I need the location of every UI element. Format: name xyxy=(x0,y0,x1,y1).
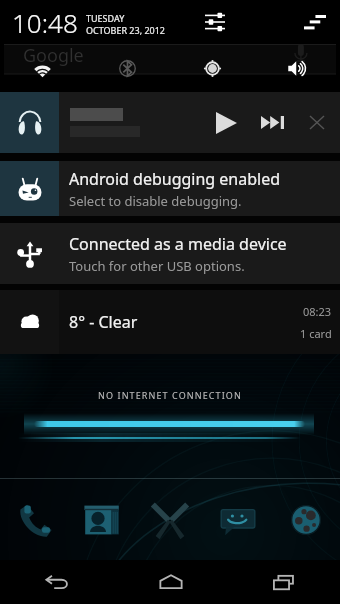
button[interactable]: Android debugging xyxy=(0,161,340,216)
button[interactable]: USB connection xyxy=(0,223,340,284)
button[interactable]: Location xyxy=(170,44,255,92)
button[interactable]: Wi-Fi xyxy=(0,44,85,92)
staticText: Google xyxy=(23,43,84,68)
other: Weather xyxy=(0,290,59,354)
button[interactable]: Bluetooth xyxy=(85,44,170,92)
staticText: Touch for other USB options. xyxy=(69,257,245,275)
staticText: Select to disable debugging. xyxy=(69,192,242,210)
staticText: NO INTERNET CONNECTION xyxy=(98,389,242,401)
staticText: 8° - Clear xyxy=(69,311,138,333)
button[interactable]: Weather xyxy=(0,290,340,354)
staticText: TUESDAY xyxy=(86,12,125,24)
staticText: Connected as a media device xyxy=(69,233,287,255)
other: Music xyxy=(0,92,59,153)
button[interactable]: Play xyxy=(204,92,248,153)
button[interactable]: Music xyxy=(0,92,340,153)
button[interactable]: Dismiss xyxy=(295,92,339,153)
staticText: Android debugging enabled xyxy=(69,168,281,190)
button[interactable]: Recent apps xyxy=(227,560,340,604)
button[interactable]: Back xyxy=(0,560,114,604)
button[interactable]: People xyxy=(68,496,136,544)
staticText: 08:23 xyxy=(303,304,332,319)
staticText: 1 card xyxy=(300,326,332,341)
button[interactable]: Clear all notifications xyxy=(295,2,335,42)
button[interactable]: Messaging xyxy=(204,496,272,544)
button[interactable]: Quick settings xyxy=(195,2,235,42)
other: Android debugging xyxy=(0,161,59,216)
button[interactable]: Sound xyxy=(255,44,340,92)
staticText: 10:48 xyxy=(12,5,78,40)
button[interactable]: Home xyxy=(114,560,227,604)
staticText: OCTOBER 23, 2012 xyxy=(86,24,166,36)
button[interactable]: Apps xyxy=(136,496,204,544)
button[interactable]: Phone xyxy=(0,496,68,544)
button[interactable]: Browser xyxy=(272,496,340,544)
other: USB connection xyxy=(0,223,59,284)
button[interactable]: Next track xyxy=(250,92,294,153)
